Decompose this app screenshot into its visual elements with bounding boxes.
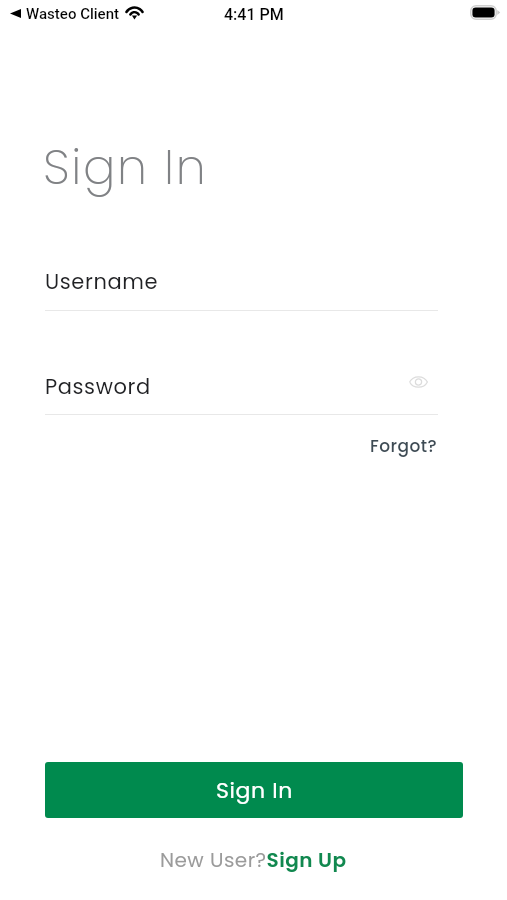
staticText: Username xyxy=(45,267,159,296)
staticText: Wasteo Client xyxy=(26,5,120,23)
button[interactable]: New User?Sign Up xyxy=(160,846,347,874)
staticText: Password xyxy=(45,372,151,401)
button[interactable]: Forgot? xyxy=(370,434,438,458)
staticText: 4:41 PM xyxy=(224,5,284,24)
button[interactable]: Sign In xyxy=(45,762,463,818)
button[interactable]: Show password xyxy=(404,367,433,396)
staticText: Sign In xyxy=(216,775,293,806)
staticText: Sign In xyxy=(43,134,208,201)
